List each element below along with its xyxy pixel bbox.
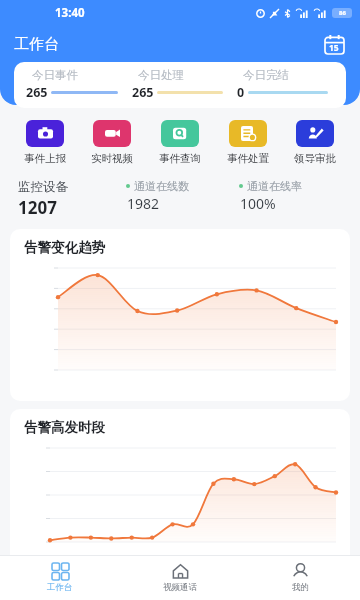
staticText: 265 (132, 84, 154, 101)
staticText: 今日处理 (138, 68, 184, 82)
button[interactable]: 事件处置 (217, 118, 279, 167)
button[interactable]: 事件查询 (149, 118, 211, 167)
button[interactable]: 今日处理 (132, 62, 237, 108)
staticText: 告警高发时段 (24, 419, 105, 436)
staticText: 工作台 (14, 35, 59, 54)
button[interactable]: 视频通话 (120, 556, 240, 600)
staticText: 0 (237, 84, 245, 101)
staticText: 1207 (18, 196, 57, 219)
button[interactable]: 告警高发时段 (10, 409, 350, 569)
staticText: 事件处置 (227, 152, 269, 165)
staticText: 通道在线率 (247, 179, 302, 193)
staticText: 265 (26, 84, 48, 101)
button[interactable]: 告警变化趋势 (10, 229, 350, 401)
button[interactable]: 事件上报 (14, 118, 76, 167)
staticText: 告警变化趋势 (24, 239, 105, 256)
staticText: 事件查询 (159, 152, 201, 165)
staticText: 实时视频 (91, 152, 133, 165)
button[interactable]: 工作台 (0, 556, 120, 600)
staticText: 工作台 (47, 582, 73, 593)
staticText: 今日事件 (32, 68, 78, 82)
button[interactable]: 实时视频 (81, 118, 143, 167)
staticText: 领导审批 (294, 152, 336, 165)
button[interactable]: Calendar (320, 30, 348, 58)
staticText: 通道在线数 (134, 179, 189, 193)
staticText: 100% (240, 194, 276, 213)
button[interactable]: 监控设备 (18, 179, 342, 219)
staticText: 今日完结 (243, 68, 289, 82)
button[interactable]: 今日完结 (237, 62, 342, 108)
staticText: 13:40 (55, 5, 85, 21)
staticText: 事件上报 (24, 152, 66, 165)
staticText: 我的 (292, 582, 309, 593)
staticText: 1982 (127, 194, 160, 213)
button[interactable]: 今日事件 (26, 62, 132, 108)
button[interactable]: 领导审批 (284, 118, 346, 167)
staticText: 86 (339, 9, 346, 17)
staticText: 视频通话 (163, 582, 197, 593)
button[interactable]: 我的 (240, 556, 360, 600)
staticText: 15 (329, 42, 339, 54)
staticText: 监控设备 (18, 179, 68, 195)
